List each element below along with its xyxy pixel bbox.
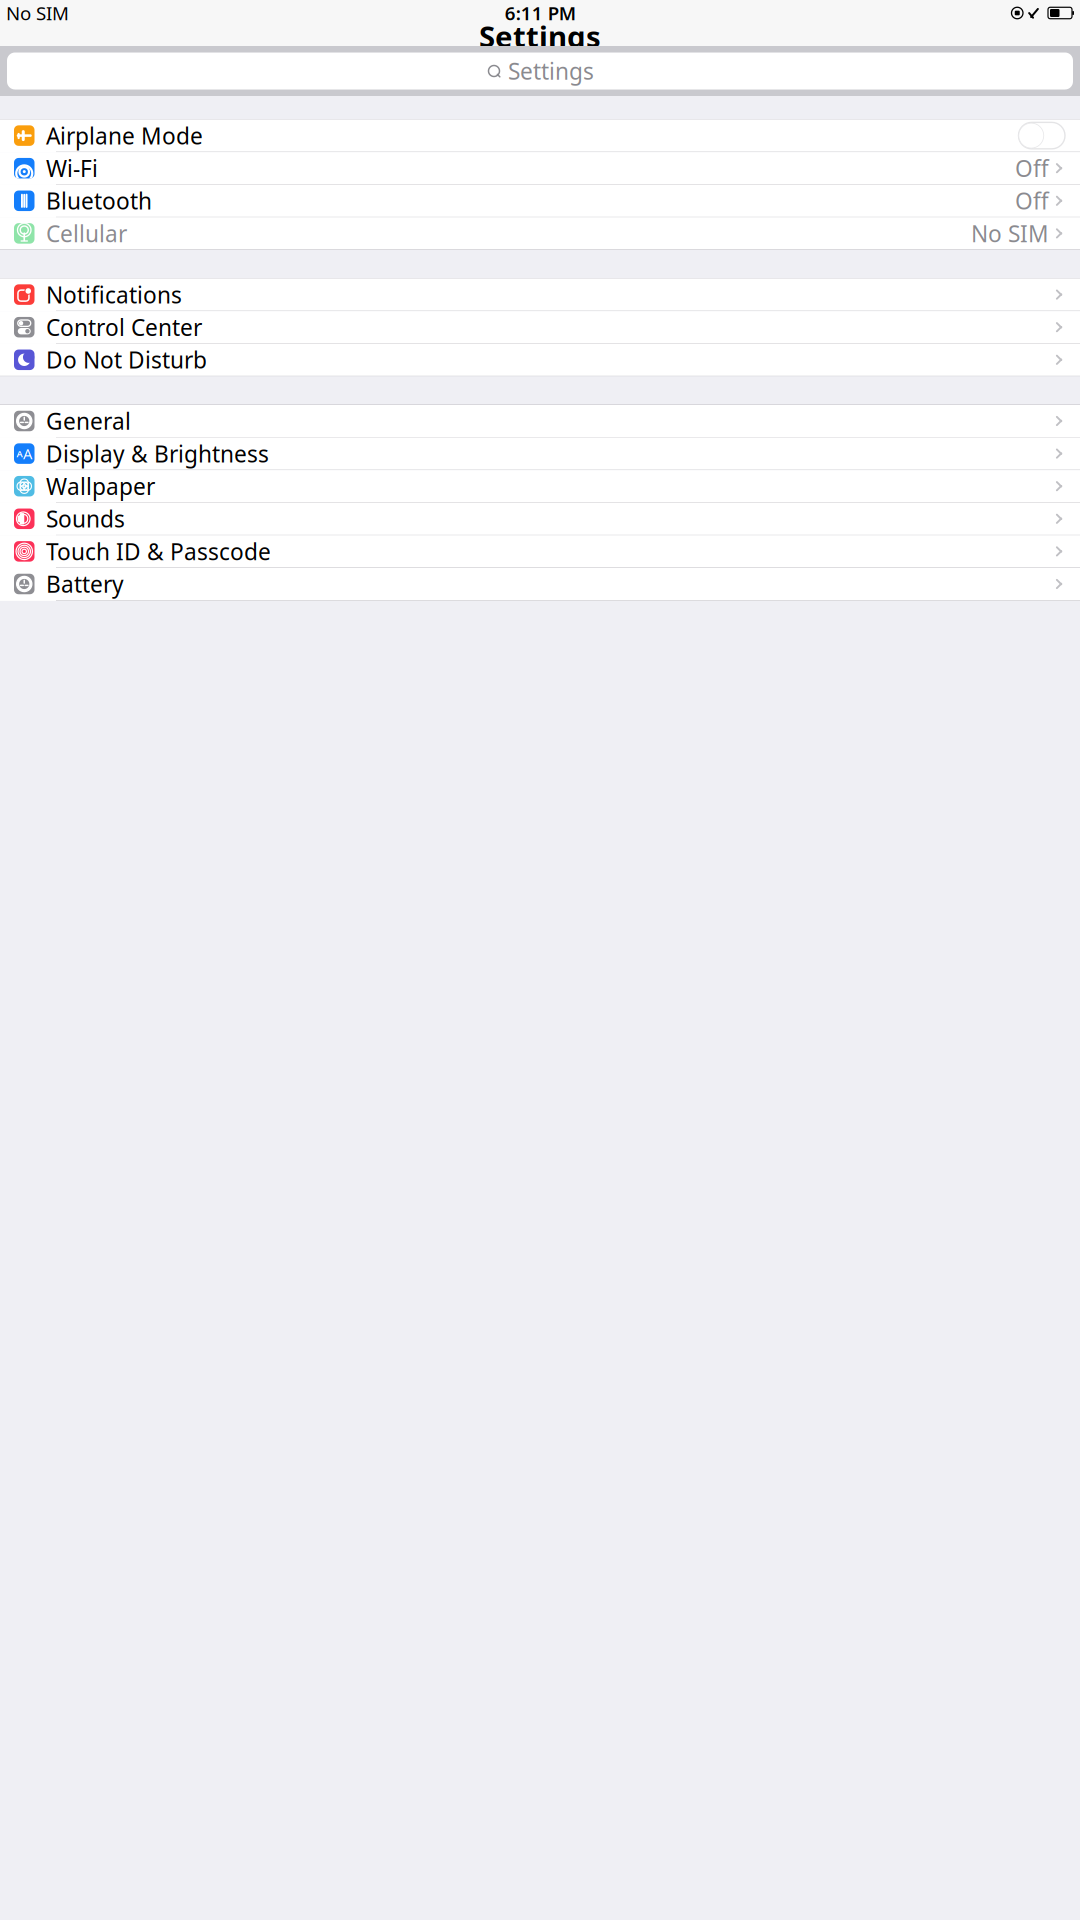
staticText: Airplane Mode [46, 120, 203, 151]
button[interactable]: Control Center [0, 311, 1080, 344]
button[interactable]: Wi-Fi [0, 152, 1080, 185]
staticText: Settings [479, 16, 601, 55]
button[interactable]: Sounds [0, 503, 1080, 535]
staticText: Touch ID & Passcode [46, 536, 271, 566]
staticText: No SIM [971, 218, 1049, 248]
staticText: Off [1015, 153, 1049, 183]
button[interactable]: Wallpaper [0, 470, 1080, 503]
staticText: Battery [46, 569, 124, 599]
staticText: No SIM [6, 1, 69, 25]
button[interactable]: Do Not Disturb [0, 344, 1080, 376]
button[interactable]: Notifications [0, 279, 1080, 311]
button[interactable]: Settings [0, 46, 1080, 96]
button[interactable]: Cellular [0, 217, 1080, 249]
staticText: Wi-Fi [46, 153, 98, 183]
button[interactable]: A [0, 438, 1080, 470]
staticText: General [46, 406, 131, 436]
button[interactable]: Touch ID & Passcode [0, 535, 1080, 568]
staticText: Settings [508, 56, 594, 86]
staticText: A [23, 444, 32, 463]
button[interactable]: General [0, 405, 1080, 438]
staticText: A [16, 447, 22, 460]
button[interactable]: Airplane Mode [0, 120, 1080, 152]
staticText: 6:11 PM [505, 1, 576, 25]
staticText: Off [1015, 186, 1049, 216]
staticText: Wallpaper [46, 471, 155, 501]
staticText: Notifications [46, 279, 182, 310]
staticText: Do Not Disturb [46, 345, 207, 375]
button[interactable]: Battery [0, 568, 1080, 601]
staticText: Cellular [46, 218, 127, 248]
staticText: Control Center [46, 312, 202, 342]
button[interactable]: Bluetooth [0, 185, 1080, 217]
staticText: Sounds [46, 504, 125, 534]
staticText: Bluetooth [46, 186, 152, 216]
staticText: Display & Brightness [46, 438, 269, 469]
